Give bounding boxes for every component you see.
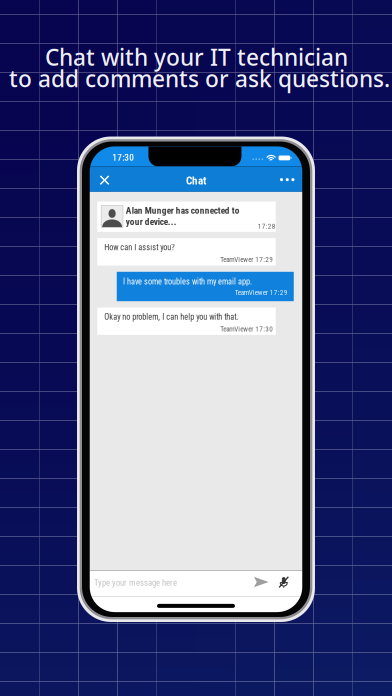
button[interactable]: Send message bbox=[250, 572, 272, 592]
staticText: Alan Munger has connected to bbox=[126, 205, 240, 216]
button[interactable]: Microphone muted bbox=[275, 572, 293, 592]
staticText: Chat bbox=[186, 174, 206, 187]
staticText: TeamViewer 17:29 bbox=[235, 288, 288, 297]
button[interactable]: More options bbox=[274, 167, 300, 192]
button[interactable]: Close bbox=[91, 167, 117, 193]
staticText: TeamViewer 17:30 bbox=[220, 325, 273, 333]
staticText: I have some troubles with my email app. bbox=[123, 277, 252, 286]
staticText: TeamViewer 17:29 bbox=[220, 255, 273, 264]
staticText: Type your message here bbox=[94, 578, 177, 588]
staticText: Chat with your IT technician bbox=[45, 42, 348, 72]
staticText: to add comments or ask questions. bbox=[9, 63, 390, 93]
staticText: your device... bbox=[126, 216, 177, 227]
staticText: How can I assist you? bbox=[104, 243, 174, 252]
staticText: 17:28 bbox=[258, 222, 276, 230]
staticText: 17:30 bbox=[112, 152, 134, 163]
staticText: Okay no problem, I can help you with tha… bbox=[104, 312, 238, 322]
